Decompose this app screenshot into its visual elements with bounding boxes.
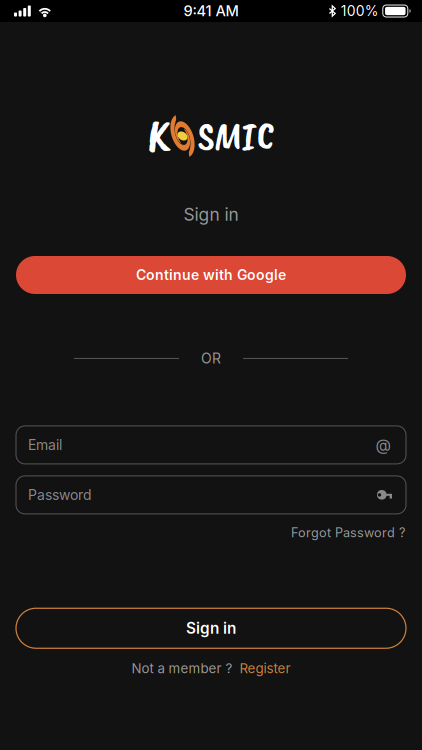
button[interactable]: Sign in: [16, 608, 406, 648]
staticText: Sign in: [186, 619, 236, 638]
staticText: SMIC: [197, 111, 274, 161]
staticText: Email: [28, 436, 62, 453]
staticText: Forgot Password ?: [291, 525, 405, 540]
staticText: 9:41 AM: [183, 2, 238, 20]
staticText: Register: [239, 660, 290, 676]
staticText: 100%: [341, 2, 379, 19]
staticText: Continue with Google: [136, 266, 286, 283]
button[interactable]: Forgot Password ?: [291, 525, 405, 540]
button[interactable]: Register: [239, 660, 290, 676]
staticText: Sign in: [183, 204, 238, 225]
staticText: Password: [28, 486, 92, 503]
staticText: K: [147, 107, 170, 165]
staticText: Not a member ?: [131, 660, 232, 676]
button[interactable]: Continue with Google: [16, 256, 406, 294]
staticText: @: [375, 435, 390, 455]
staticText: OR: [201, 350, 221, 367]
